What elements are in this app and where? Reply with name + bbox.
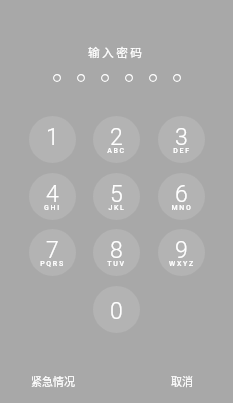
button[interactable]: 紧急情况 [31, 373, 75, 389]
staticText: 8 [110, 237, 123, 264]
staticText: 4 [46, 181, 59, 208]
button[interactable]: 5 [93, 173, 140, 220]
staticText: GHI [44, 204, 61, 212]
button[interactable]: 7 [29, 229, 76, 276]
staticText: 0 [110, 298, 123, 325]
staticText: 5 [110, 181, 123, 208]
staticText: 输入密码 [88, 43, 145, 60]
staticText: MNO [171, 204, 193, 212]
staticText: 9 [175, 237, 188, 264]
button[interactable]: 2 [93, 116, 140, 163]
staticText: DEF [173, 147, 191, 155]
button[interactable]: 8 [93, 229, 140, 276]
button[interactable]: 取消 [171, 373, 193, 389]
staticText: ABC [107, 147, 126, 155]
staticText: 1 [46, 124, 59, 151]
staticText: 2 [110, 124, 123, 151]
staticText: 取消 [171, 373, 193, 389]
button[interactable]: 0 [93, 286, 140, 333]
staticText: 6 [175, 181, 188, 208]
button[interactable]: 4 [29, 173, 76, 220]
button[interactable]: 6 [158, 173, 205, 220]
button[interactable]: 1 [29, 116, 76, 163]
staticText: PQRS [40, 260, 65, 268]
button[interactable]: 9 [158, 229, 205, 276]
staticText: TUV [107, 260, 126, 268]
staticText: WXYZ [169, 260, 195, 268]
staticText: 3 [175, 124, 188, 151]
button[interactable]: 3 [158, 116, 205, 163]
staticText: 紧急情况 [31, 373, 75, 389]
staticText: 7 [46, 237, 59, 264]
staticText: JKL [108, 204, 126, 212]
